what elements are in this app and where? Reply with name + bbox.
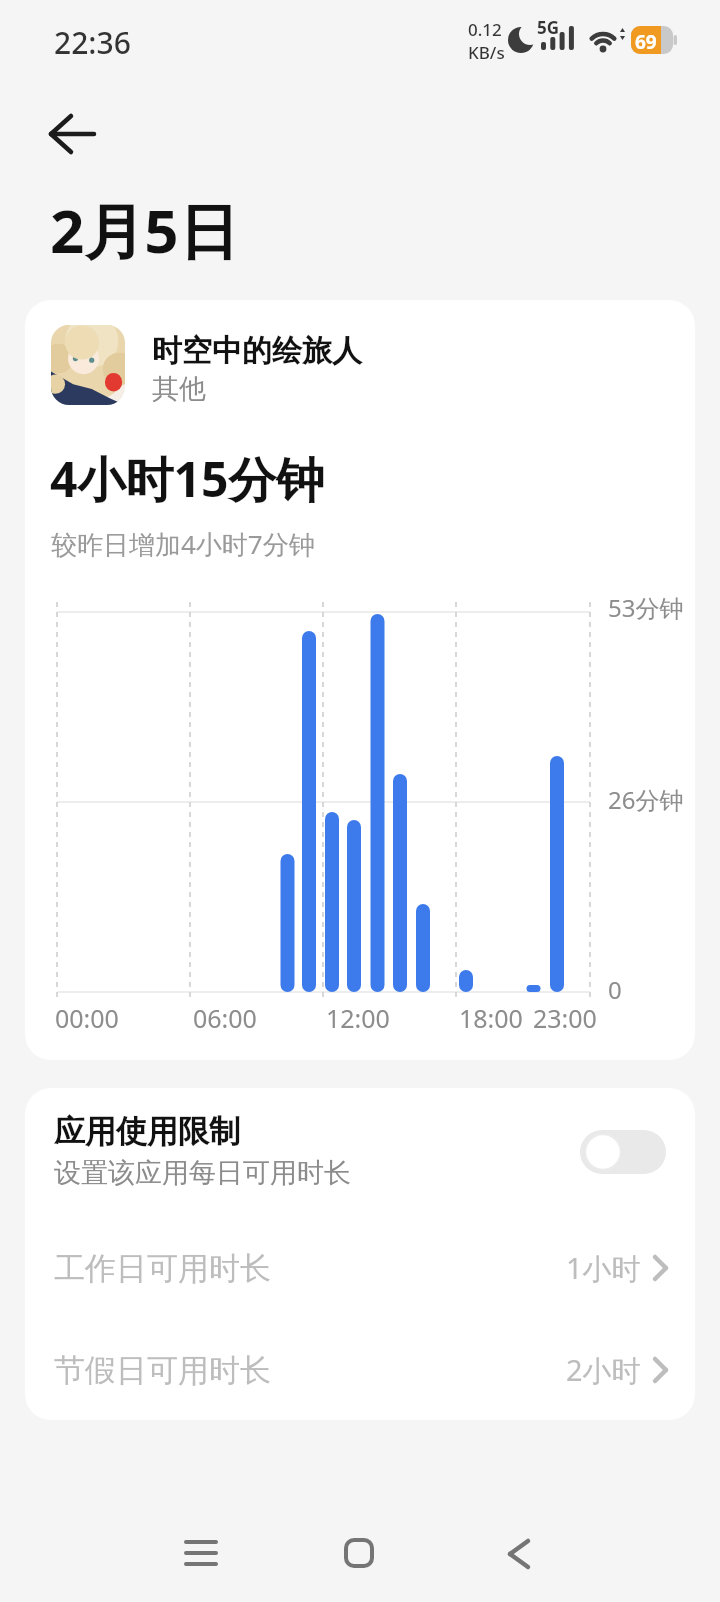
button[interactable] bbox=[48, 110, 98, 158]
staticText: 0.12 bbox=[468, 18, 502, 41]
staticText: 53分钟 bbox=[608, 591, 684, 624]
staticText: 2小时 bbox=[566, 1350, 641, 1390]
button[interactable] bbox=[344, 1538, 374, 1568]
staticText: 22:36 bbox=[54, 22, 131, 63]
staticText: 其他 bbox=[152, 372, 206, 406]
button[interactable] bbox=[506, 1539, 532, 1569]
button[interactable] bbox=[580, 1130, 666, 1174]
button[interactable] bbox=[186, 1540, 216, 1568]
button[interactable]: 节假日可用时长 bbox=[25, 1335, 695, 1405]
staticText: 06:00 bbox=[193, 1001, 257, 1035]
staticText: 18:00 bbox=[459, 1001, 523, 1035]
staticText: 0 bbox=[608, 973, 622, 1006]
staticText: 23:00 bbox=[533, 1001, 597, 1035]
staticText: 2月5日 bbox=[50, 189, 239, 271]
staticText: 节假日可用时长 bbox=[54, 1351, 271, 1390]
staticText: 12:00 bbox=[326, 1001, 390, 1035]
staticText: 较昨日增加4小时7分钟 bbox=[51, 526, 315, 562]
staticText: 5G bbox=[537, 16, 560, 39]
button[interactable]: 工作日可用时长 bbox=[25, 1233, 695, 1303]
staticText: 时空中的绘旅人 bbox=[152, 332, 362, 370]
staticText: 工作日可用时长 bbox=[54, 1249, 271, 1288]
staticText: 00:00 bbox=[55, 1001, 119, 1035]
staticText: 1小时 bbox=[566, 1248, 641, 1288]
staticText: 26分钟 bbox=[608, 783, 684, 816]
staticText: 69 bbox=[635, 29, 657, 55]
staticText: 设置该应用每日可用时长 bbox=[54, 1156, 351, 1190]
staticText: 4小时15分钟 bbox=[50, 446, 325, 512]
button[interactable] bbox=[51, 325, 125, 405]
staticText: KB/s bbox=[468, 41, 505, 64]
staticText: 应用使用限制 bbox=[54, 1112, 240, 1151]
